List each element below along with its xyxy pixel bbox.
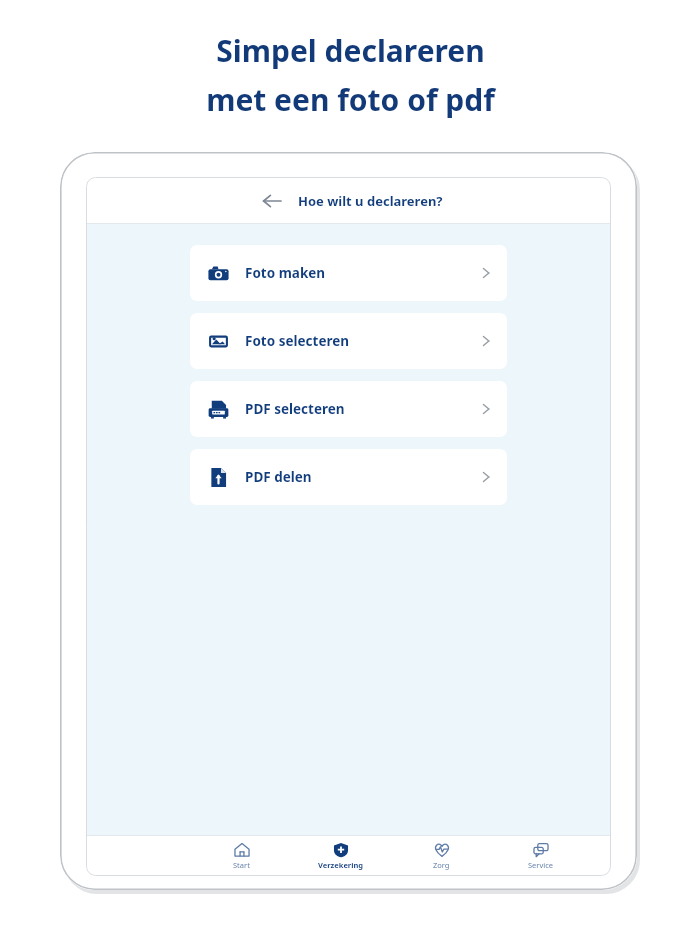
staticText: Verzekering xyxy=(318,860,364,870)
button[interactable]: Service xyxy=(504,836,578,876)
staticText: PDF selecteren xyxy=(245,400,345,418)
staticText: Hoe wilt u declareren? xyxy=(298,192,443,210)
staticText: Foto selecteren xyxy=(245,332,350,350)
button[interactable]: Terug xyxy=(255,184,289,218)
staticText: Zorg xyxy=(433,860,450,870)
button[interactable]: Start xyxy=(204,836,278,876)
button[interactable]: Zorg xyxy=(404,836,478,876)
staticText: Foto maken xyxy=(245,264,326,282)
button[interactable]: PDF selecteren xyxy=(190,381,507,437)
button[interactable]: Verzekering xyxy=(304,836,378,876)
button[interactable]: Foto selecteren xyxy=(190,313,507,369)
staticText: Service xyxy=(528,860,554,870)
button[interactable]: Foto maken xyxy=(190,245,507,301)
staticText: met een foto of pdf xyxy=(206,79,495,120)
staticText: PDF delen xyxy=(245,468,312,486)
staticText: Simpel declareren xyxy=(216,30,485,71)
staticText: Start xyxy=(233,860,250,870)
button[interactable]: PDF delen xyxy=(190,449,507,505)
